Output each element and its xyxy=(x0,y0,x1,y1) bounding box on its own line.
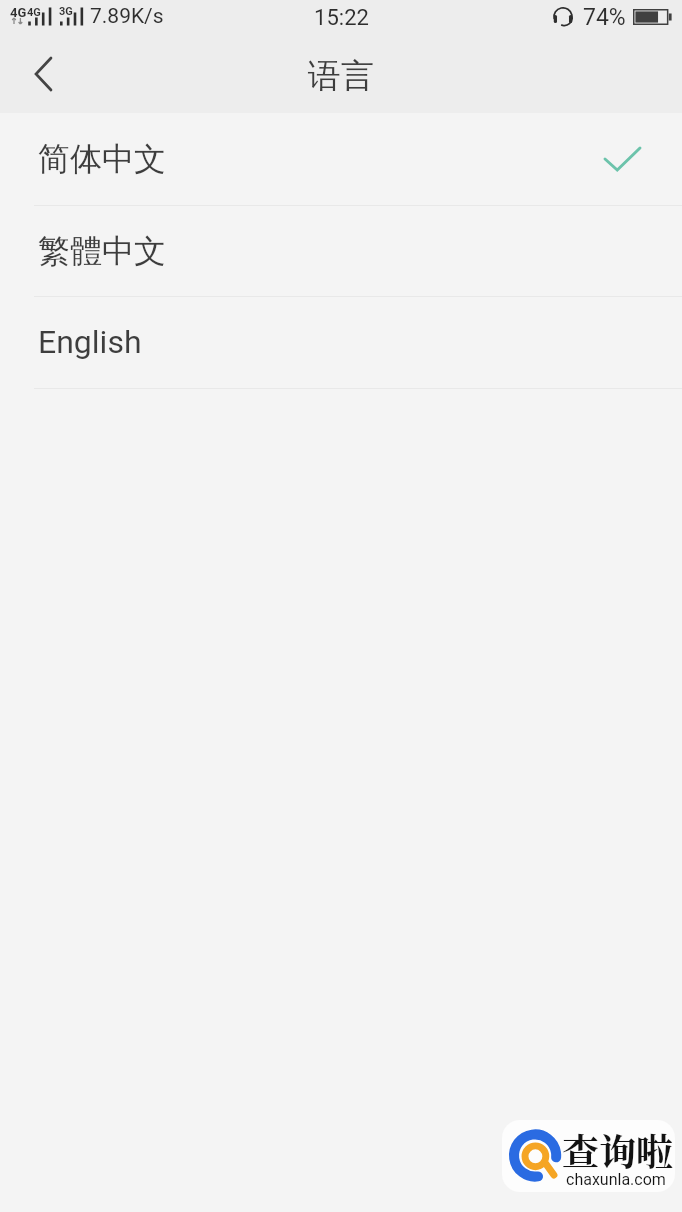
staticText: 简体中文 xyxy=(38,139,166,179)
staticText: English xyxy=(38,323,142,361)
staticText: 繁體中文 xyxy=(38,231,166,271)
staticText: 查询啦 xyxy=(562,1123,673,1176)
staticText: 4G xyxy=(27,6,41,19)
staticText: 74% xyxy=(583,4,626,31)
staticText: 15:22 xyxy=(314,5,369,31)
button[interactable]: Back xyxy=(0,34,76,113)
staticText: chaxunla.com xyxy=(566,1170,666,1189)
button[interactable]: 简体中文 xyxy=(0,113,682,206)
button[interactable]: 繁體中文 xyxy=(0,206,682,297)
staticText: 7.89K/s xyxy=(90,4,164,29)
staticText: 语言 xyxy=(308,55,374,97)
staticText: 4G xyxy=(10,5,27,20)
staticText: 3G xyxy=(59,5,73,18)
button[interactable]: English xyxy=(0,297,682,389)
